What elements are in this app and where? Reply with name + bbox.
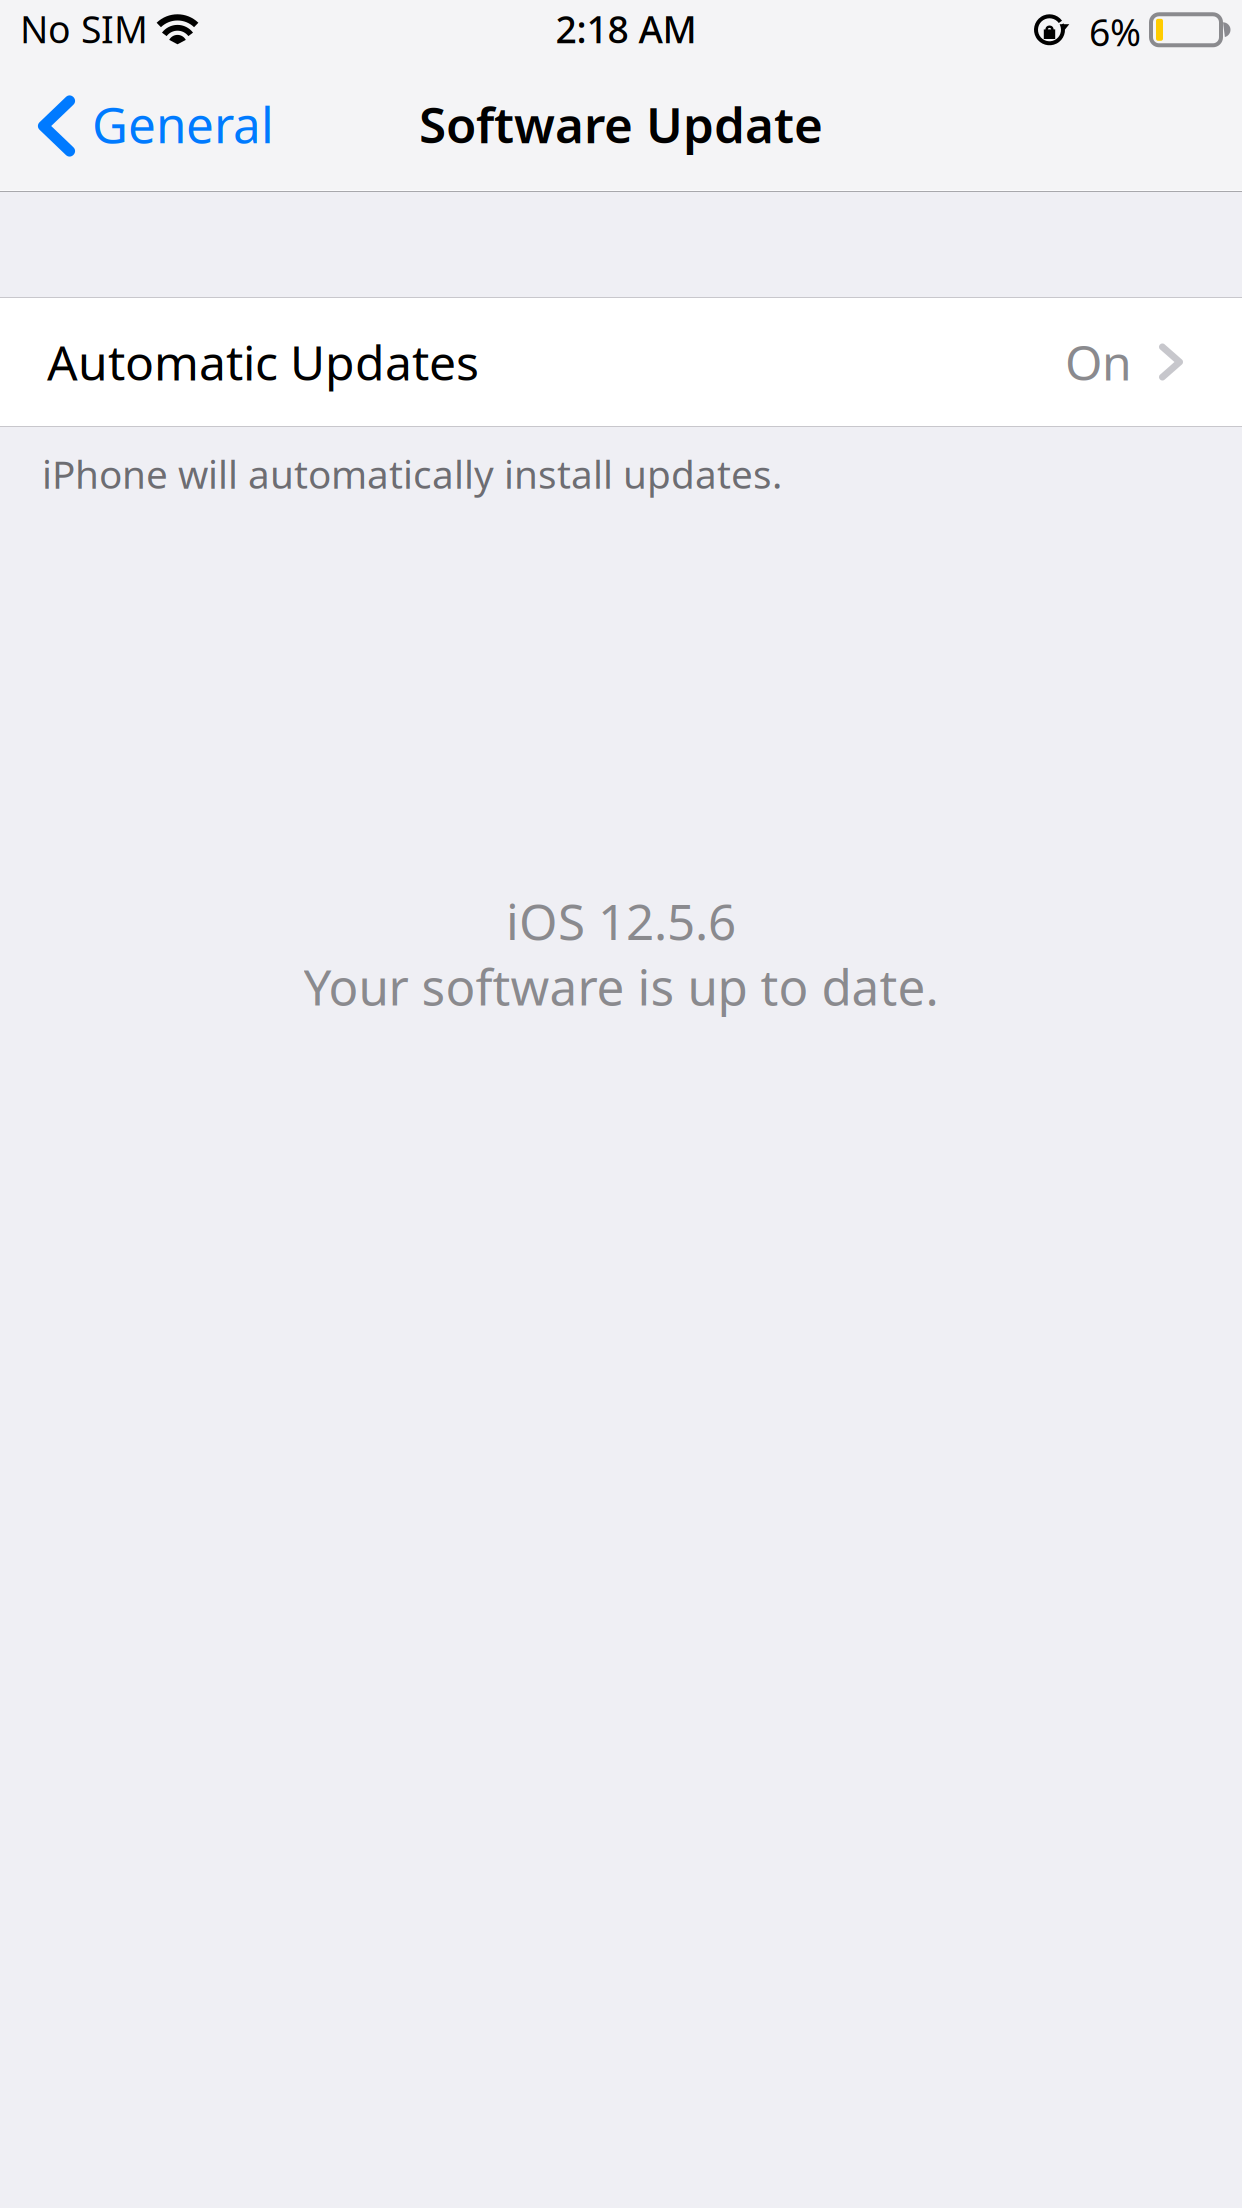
staticText: No SIM bbox=[20, 4, 148, 54]
button[interactable]: Automatic Updates bbox=[0, 297, 1242, 427]
staticText: iOS 12.5.6 bbox=[506, 888, 736, 953]
staticText: 6% bbox=[1089, 7, 1141, 57]
staticText: On bbox=[1065, 330, 1132, 394]
staticText: Software Update bbox=[419, 91, 823, 157]
staticText: Automatic Updates bbox=[47, 330, 479, 394]
staticText: 2:18 AM bbox=[555, 4, 696, 54]
staticText: iPhone will automatically install update… bbox=[42, 448, 782, 499]
button[interactable]: Back to General bbox=[0, 60, 296, 192]
staticText: Your software is up to date. bbox=[303, 953, 938, 1019]
staticText: General bbox=[92, 91, 274, 157]
